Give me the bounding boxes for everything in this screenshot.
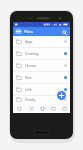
button[interactable]: Net: [13, 72, 70, 83]
button[interactable]: Home: [13, 103, 25, 113]
button[interactable]: Dashboard: [37, 103, 48, 113]
button[interactable]: Coding: [13, 48, 70, 59]
button[interactable]: More: [59, 103, 70, 113]
button[interactable]: Add: [57, 91, 66, 100]
staticText: Life: [25, 87, 32, 92]
button[interactable]: Home: [13, 60, 70, 71]
staticText: App: [25, 39, 33, 44]
button[interactable]: Search: [60, 28, 68, 36]
button[interactable]: Open navigation drawer: [15, 28, 22, 35]
button[interactable]: Tools: [25, 103, 37, 113]
staticText: Net: [25, 75, 32, 80]
button[interactable]: Study: [13, 96, 70, 103]
button[interactable]: Files: [48, 103, 59, 113]
staticText: Study: [25, 97, 36, 102]
button[interactable]: App: [13, 36, 70, 47]
button[interactable]: Life: [13, 84, 70, 95]
button[interactable]: Home: [34, 130, 50, 135]
staticText: Home: [25, 63, 37, 68]
staticText: Files: [24, 29, 33, 35]
staticText: Coding: [25, 51, 39, 56]
